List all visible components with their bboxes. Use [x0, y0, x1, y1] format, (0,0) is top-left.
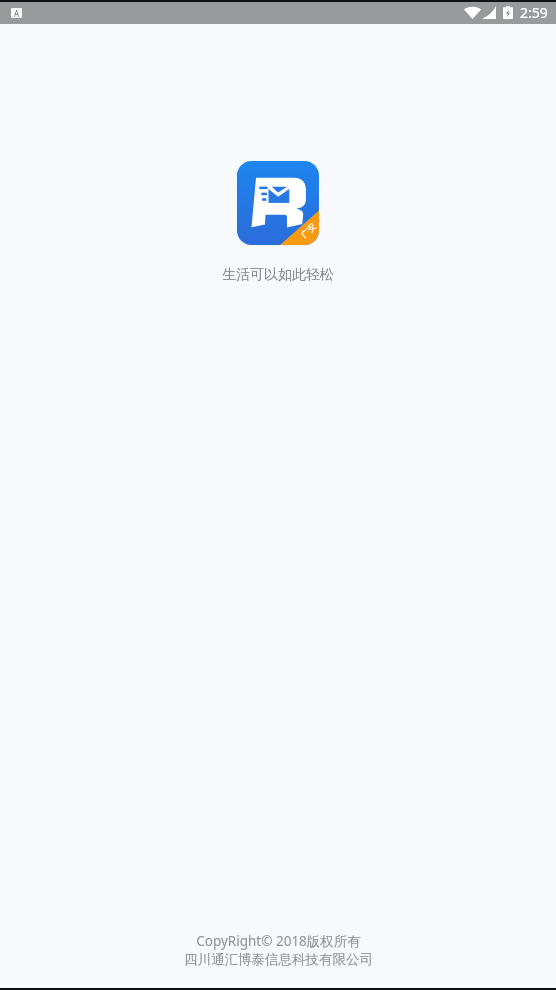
staticText: 广安 — [299, 221, 319, 241]
staticText: A — [14, 8, 20, 18]
staticText: 2:59 — [520, 3, 548, 22]
staticText: 四川通汇博泰信息科技有限公司 — [184, 951, 373, 968]
staticText: CopyRight© 2018版权所有 — [196, 932, 361, 950]
staticText: 生活可以如此轻松 — [222, 266, 334, 284]
